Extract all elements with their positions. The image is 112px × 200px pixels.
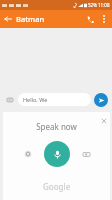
button[interactable]: More options bbox=[97, 12, 111, 26]
staticText: 11:08 bbox=[98, 2, 110, 8]
staticText: Batman bbox=[16, 14, 45, 24]
button[interactable]: Voice settings bbox=[21, 147, 35, 161]
staticText: Google bbox=[43, 181, 71, 192]
button[interactable]: Send bbox=[94, 93, 108, 107]
staticText: Speak now bbox=[36, 121, 77, 132]
button[interactable]: Hello, We bbox=[18, 93, 91, 106]
button[interactable]: Back bbox=[0, 11, 16, 27]
button[interactable]: Keyboard bbox=[79, 147, 93, 161]
button[interactable]: Insert emoji bbox=[4, 94, 15, 105]
button[interactable]: Call bbox=[83, 12, 97, 26]
staticText: 52% bbox=[88, 2, 97, 8]
button[interactable]: Close bbox=[99, 116, 108, 125]
staticText: Hello, We bbox=[23, 96, 48, 103]
button[interactable]: Microphone bbox=[44, 141, 70, 167]
